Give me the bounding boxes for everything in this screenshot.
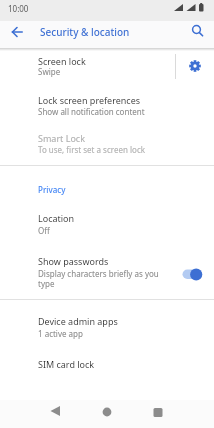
staticText: Show passwords <box>38 255 109 267</box>
button[interactable]: Smart Lock <box>0 124 214 160</box>
button[interactable]: Lock screen preferences <box>0 88 214 122</box>
staticText: SIM card lock <box>38 358 95 370</box>
staticText: Privacy <box>38 184 66 195</box>
staticText: Display characters briefly as you type <box>38 268 159 290</box>
staticText: Off <box>38 225 50 236</box>
button[interactable]: SIM card lock <box>0 348 214 382</box>
button[interactable]: Screen lock <box>0 51 214 88</box>
button[interactable] <box>180 267 204 283</box>
button[interactable]: Show passwords <box>0 246 214 295</box>
staticText: Screen lock <box>38 55 86 67</box>
button[interactable] <box>147 400 169 428</box>
button[interactable]: Location <box>0 205 214 241</box>
button[interactable] <box>183 54 208 79</box>
button[interactable] <box>185 21 211 48</box>
staticText: Show all notification content <box>38 106 145 117</box>
staticText: Location <box>38 212 75 224</box>
button[interactable] <box>44 400 66 428</box>
button[interactable] <box>5 21 29 48</box>
staticText: Smart Lock <box>38 132 85 144</box>
staticText: 10:00 <box>8 3 29 14</box>
staticText: 1 active app <box>38 328 83 339</box>
staticText: Device admin apps <box>38 315 118 327</box>
button[interactable] <box>96 400 118 428</box>
button[interactable]: Device admin apps <box>0 307 214 344</box>
staticText: To use, first set a screen lock <box>38 144 145 155</box>
staticText: Swipe <box>38 66 61 77</box>
staticText: Security & location <box>40 25 130 39</box>
staticText: Lock screen preferences <box>38 94 141 106</box>
